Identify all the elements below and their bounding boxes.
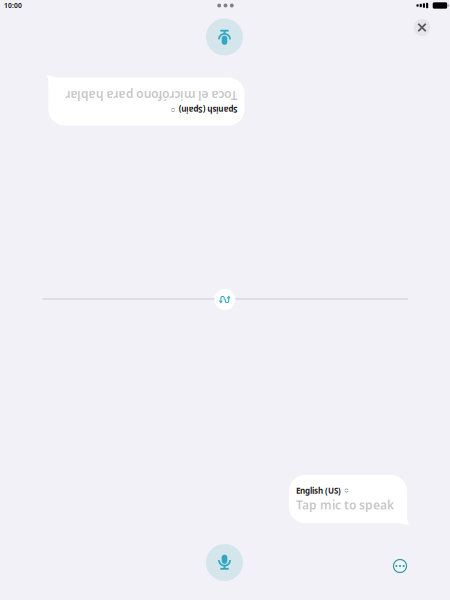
- staticText: English (US): [296, 485, 341, 496]
- button[interactable]: Spanish microphone: [206, 18, 243, 55]
- staticText: Spanish (Spain): [55, 88, 114, 98]
- staticText: Toca el micrófono para hablar: [55, 99, 227, 115]
- button[interactable]: Swap languages: [214, 289, 235, 310]
- staticText: Tap mic to speak: [296, 497, 394, 513]
- button[interactable]: More options: [393, 559, 406, 572]
- staticText: 10:00: [4, 1, 22, 10]
- button[interactable]: English microphone: [206, 544, 243, 581]
- button[interactable]: Close: [413, 19, 430, 36]
